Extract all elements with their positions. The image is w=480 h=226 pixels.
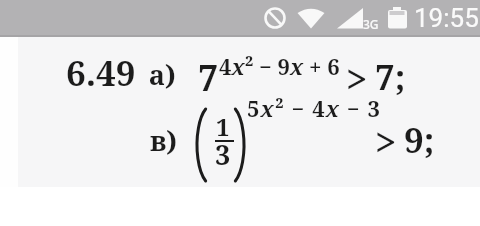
staticText: 3 — [215, 136, 231, 173]
staticText: 5x² − 4x − 3 — [247, 93, 381, 123]
staticText: 6.49 — [66, 49, 136, 97]
staticText: в) — [150, 122, 178, 159]
staticText: 7 — [198, 53, 219, 102]
staticText: 4x² − 9x + 6 — [219, 51, 340, 81]
staticText: > — [346, 52, 368, 104]
staticText: 19:55 — [414, 3, 479, 33]
staticText: 9; — [404, 116, 435, 164]
staticText: 3G — [363, 16, 379, 32]
staticText: 7; — [375, 53, 406, 101]
staticText: 1 — [216, 110, 230, 143]
staticText: > — [375, 115, 397, 167]
staticText: а) — [149, 56, 176, 93]
